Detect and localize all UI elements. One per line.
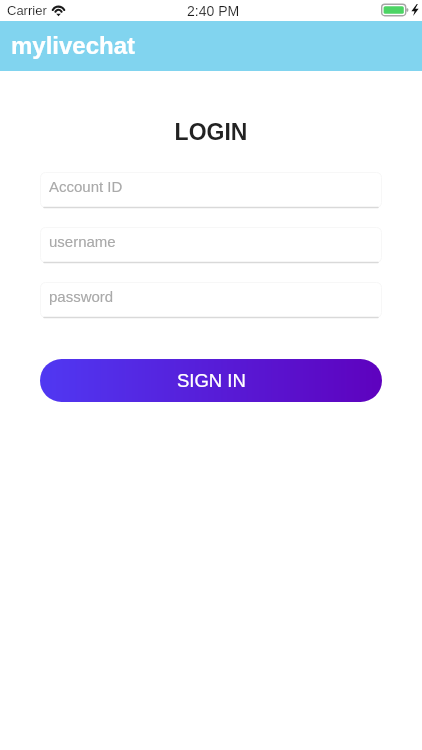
staticText: SIGN IN <box>177 370 246 391</box>
other: Battery charging <box>381 4 417 16</box>
button[interactable]: username <box>40 227 382 263</box>
staticText: username <box>49 233 116 250</box>
staticText: LOGIN <box>0 119 422 145</box>
staticText: Account ID <box>49 178 123 195</box>
staticText: Carrier <box>7 3 47 18</box>
staticText: 2:40 PM <box>187 3 240 19</box>
staticText: password <box>49 288 114 305</box>
button[interactable]: SIGN IN <box>40 359 382 402</box>
other: Wi-Fi signal <box>51 3 67 17</box>
button[interactable]: password <box>40 282 382 318</box>
staticText: mylivechat <box>11 32 136 59</box>
button[interactable]: Account ID <box>40 172 382 208</box>
